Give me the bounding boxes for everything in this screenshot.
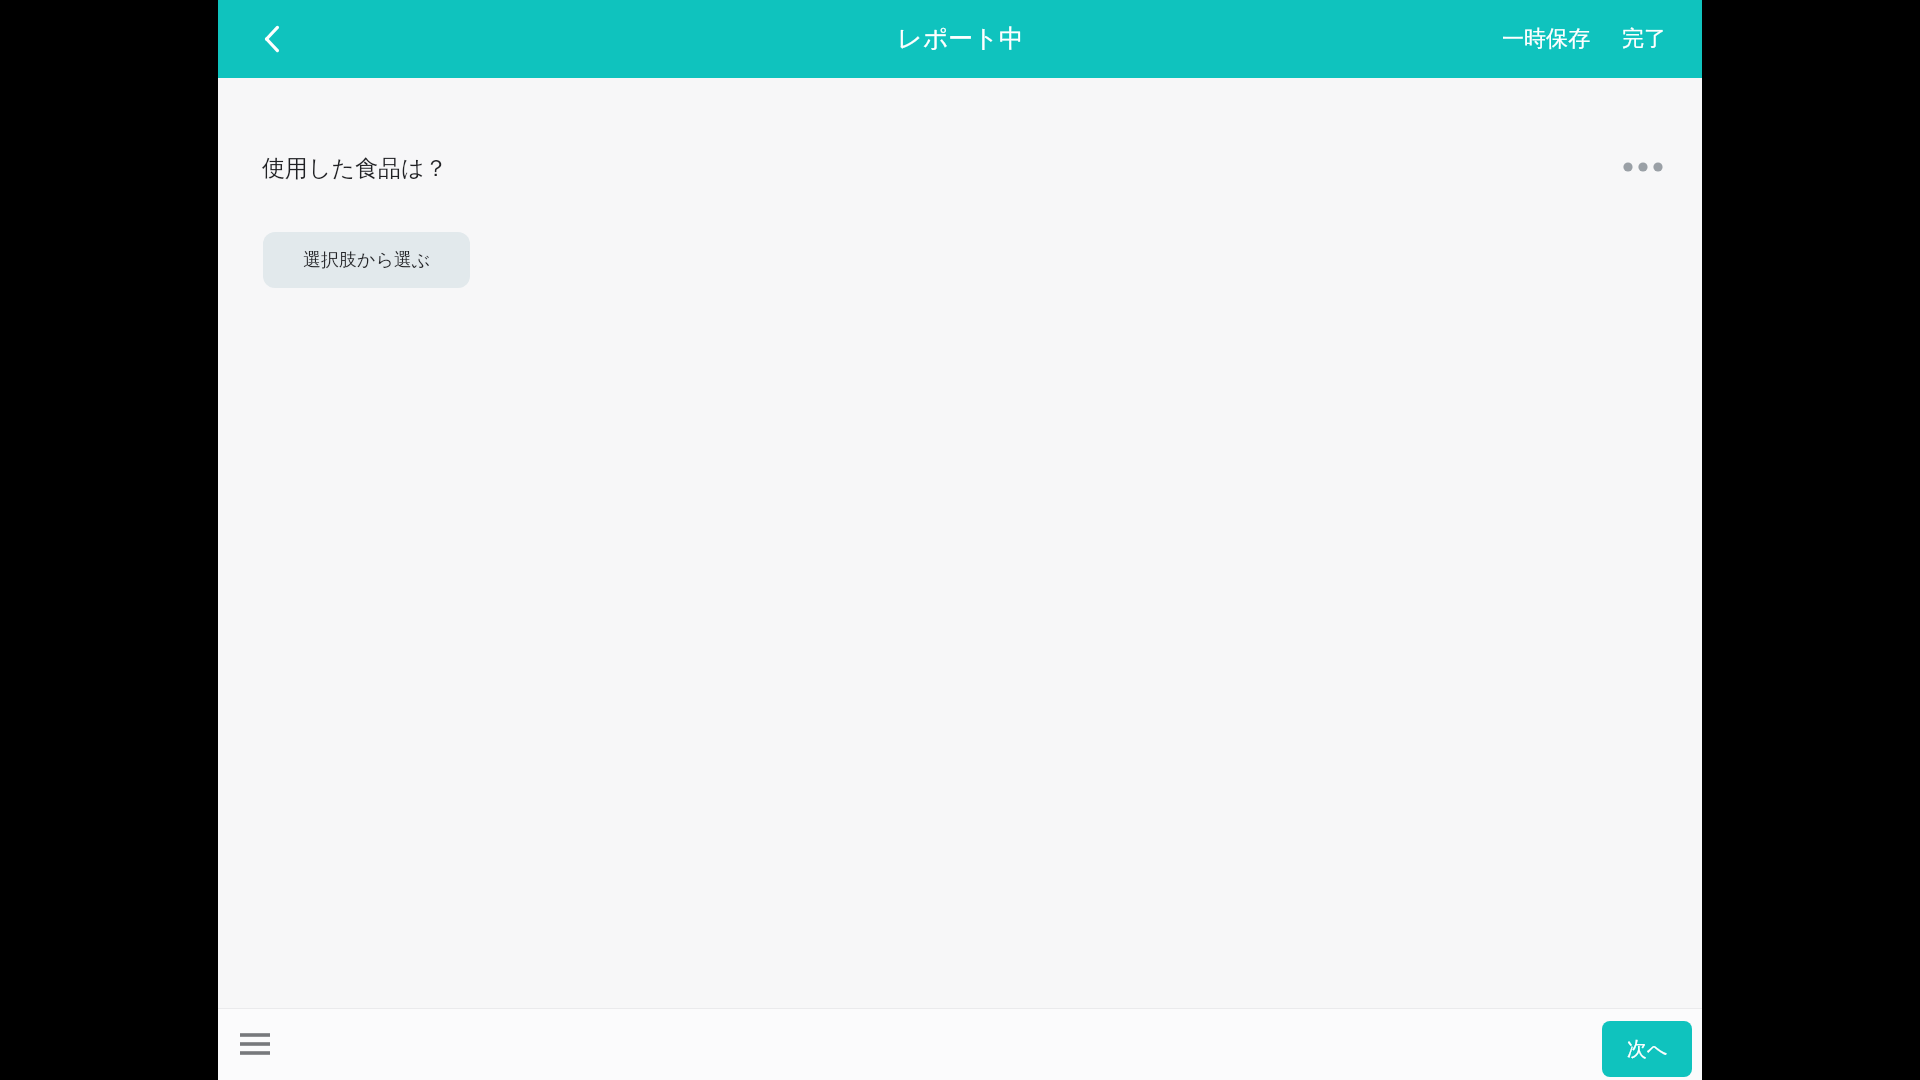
staticText: 完了 xyxy=(1622,25,1666,53)
button[interactable]: More options xyxy=(1612,136,1674,198)
button[interactable]: Back xyxy=(240,7,304,71)
staticText: レポート中 xyxy=(897,23,1024,54)
button[interactable]: 完了 xyxy=(1616,15,1672,63)
staticText: 一時保存 xyxy=(1502,25,1590,53)
button[interactable]: 一時保存 xyxy=(1496,15,1596,63)
staticText: 選択肢から選ぶ xyxy=(303,249,431,272)
staticText: 次へ xyxy=(1627,1037,1668,1062)
button[interactable]: 選択肢から選ぶ xyxy=(263,232,470,288)
button[interactable]: 次へ xyxy=(1602,1021,1692,1077)
staticText: 使用した食品は？ xyxy=(262,154,448,183)
button[interactable]: Menu xyxy=(226,1015,284,1073)
